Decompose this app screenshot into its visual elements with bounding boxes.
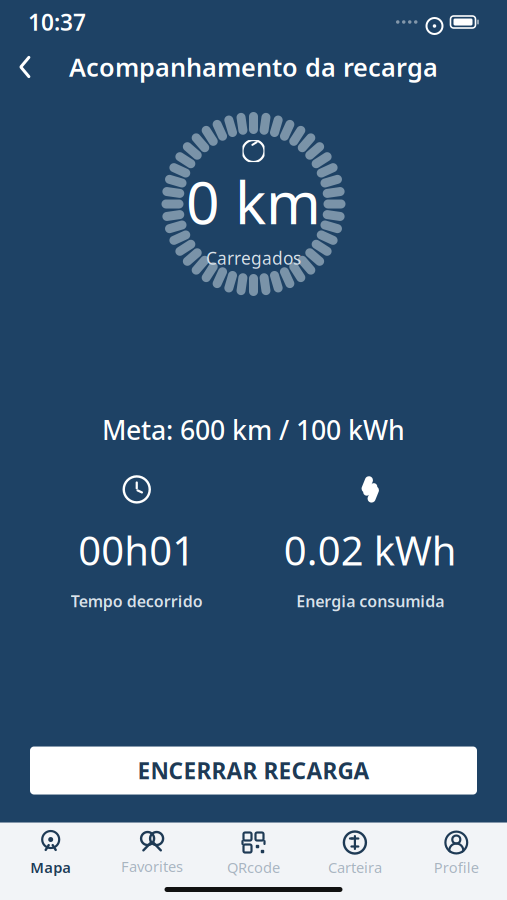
staticText: Carteira — [328, 857, 382, 877]
button[interactable]: QRcode — [203, 822, 304, 881]
staticText: Tempo decorrido — [71, 590, 203, 612]
staticText: Carregados — [206, 246, 301, 269]
staticText: Meta: 600 km / 100 kWh — [102, 412, 405, 447]
staticText: 00h01 — [78, 523, 195, 576]
staticText: ENCERRAR RECARGA — [137, 755, 369, 786]
staticText: 0 km — [186, 162, 321, 240]
button[interactable]: Back — [0, 46, 50, 88]
staticText: Profile — [434, 857, 479, 877]
staticText: Mapa — [30, 857, 71, 877]
button[interactable]: Profile — [406, 822, 507, 881]
button[interactable]: Carteira — [304, 822, 406, 881]
staticText: 10:37 — [28, 7, 86, 37]
button[interactable]: ENCERRAR RECARGA — [30, 746, 477, 794]
button[interactable]: Mapa — [0, 822, 101, 881]
staticText: 0.02 kWh — [284, 523, 457, 576]
button[interactable]: Favorites — [101, 823, 203, 880]
staticText: Acompanhamento da recarga — [69, 50, 438, 84]
staticText: Favorites — [121, 856, 183, 876]
staticText: QRcode — [227, 857, 280, 877]
staticText: Energia consumida — [296, 590, 444, 612]
